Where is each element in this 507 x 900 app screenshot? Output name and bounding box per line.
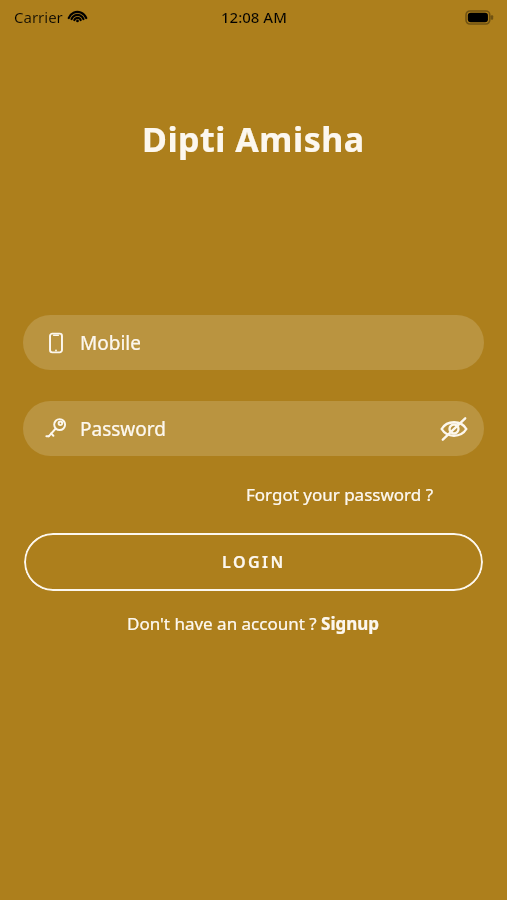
staticText: Dipti Amisha [142, 116, 365, 162]
button[interactable]: Forgot your password ? [246, 479, 434, 510]
staticText: LOGIN [222, 551, 286, 573]
button[interactable]: Password [23, 401, 484, 456]
button[interactable]: Mobile [23, 315, 484, 370]
button[interactable]: Don't have an account ? Signup [121, 606, 386, 641]
staticText: Password [80, 416, 166, 442]
staticText: 12:08 AM [221, 7, 287, 27]
staticText: Don't have an account ? Signup [127, 612, 380, 635]
button[interactable]: Toggle password visibility [432, 407, 476, 451]
staticText: Carrier [14, 7, 63, 27]
staticText: Forgot your password ? [246, 483, 434, 506]
button[interactable]: LOGIN [24, 533, 483, 591]
staticText: Mobile [80, 330, 141, 356]
